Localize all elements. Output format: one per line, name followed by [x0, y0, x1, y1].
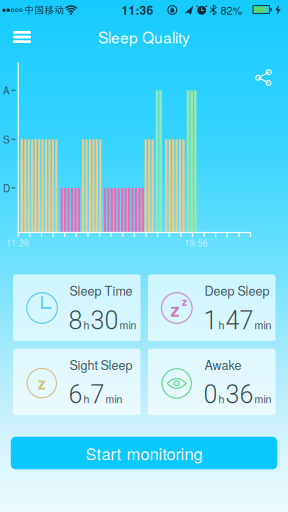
staticText: 36: [225, 380, 253, 409]
button[interactable]: z: [13, 349, 140, 415]
staticText: 中国移动: [24, 4, 64, 16]
staticText: min: [119, 317, 136, 332]
staticText: A: [3, 83, 10, 97]
staticText: z: [38, 371, 46, 394]
staticText: h: [83, 317, 89, 332]
staticText: h: [218, 391, 224, 406]
staticText: 0: [203, 380, 217, 409]
staticText: S: [3, 132, 10, 146]
button[interactable]: [9, 26, 35, 48]
staticText: min: [254, 317, 271, 332]
staticText: 82%: [220, 2, 242, 18]
staticText: h: [218, 317, 224, 332]
staticText: z: [170, 297, 179, 322]
button[interactable]: Start monitoring: [11, 437, 277, 469]
staticText: 6: [68, 380, 82, 409]
staticText: 47: [225, 306, 253, 335]
staticText: Sight Sleep: [69, 356, 132, 373]
button[interactable]: [251, 65, 275, 89]
staticText: 1: [203, 306, 217, 335]
staticText: Sleep Time: [69, 281, 132, 299]
button[interactable]: Sleep Time: [13, 274, 140, 341]
staticText: Start monitoring: [85, 441, 202, 465]
staticText: 11:26: [6, 236, 29, 249]
staticText: z: [182, 293, 188, 309]
staticText: 8: [68, 306, 82, 335]
staticText: 11:36: [121, 1, 153, 18]
staticText: min: [254, 391, 271, 406]
staticText: Awake: [204, 356, 241, 373]
staticText: 30: [90, 306, 118, 335]
staticText: 19:56: [184, 236, 207, 249]
staticText: min: [105, 391, 122, 406]
staticText: Deep Sleep: [204, 281, 269, 299]
button[interactable]: Awake: [148, 349, 275, 415]
staticText: D: [3, 181, 10, 195]
staticText: 7: [90, 380, 104, 409]
staticText: Sleep Quality: [98, 26, 190, 48]
staticText: h: [83, 391, 89, 406]
button[interactable]: z: [148, 274, 275, 341]
